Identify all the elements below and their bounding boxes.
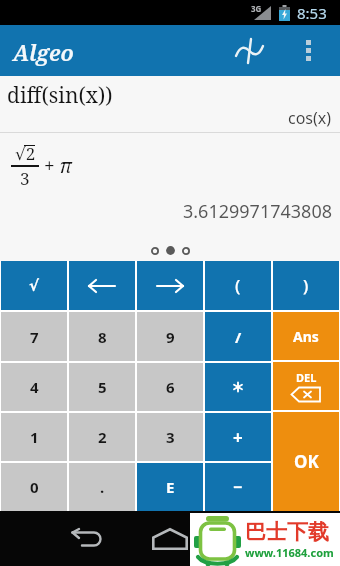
staticText: 3: [20, 167, 30, 190]
staticText: (: [235, 274, 241, 297]
staticText: √: [29, 277, 40, 294]
button[interactable]: 2: [69, 413, 135, 461]
button[interactable]: 1: [1, 413, 67, 461]
staticText: 巴士下载: [245, 519, 329, 545]
staticText: Algeo: [13, 37, 74, 67]
button[interactable]: [148, 511, 192, 566]
staticText: /: [235, 327, 242, 347]
staticText: +: [233, 426, 243, 449]
button[interactable]: E: [137, 463, 203, 511]
staticText: −: [233, 476, 243, 498]
staticText: + π: [39, 153, 72, 179]
button[interactable]: 6: [137, 363, 203, 411]
button[interactable]: [205, 363, 271, 411]
staticText: 6: [166, 377, 175, 397]
staticText: diff(sin(x)): [7, 81, 113, 110]
button[interactable]: .: [69, 463, 135, 511]
staticText: ): [303, 274, 309, 297]
button[interactable]: [228, 25, 272, 76]
staticText: Ans: [293, 327, 319, 346]
staticText: cos(x): [288, 107, 332, 129]
staticText: OK: [294, 450, 319, 473]
staticText: 2: [98, 427, 107, 447]
button[interactable]: 7: [1, 312, 67, 361]
button[interactable]: ): [273, 261, 339, 310]
button[interactable]: 0: [1, 463, 67, 511]
staticText: E: [166, 477, 175, 497]
staticText: √2: [15, 142, 36, 165]
button[interactable]: OK: [273, 412, 339, 511]
staticText: 3G: [251, 3, 262, 14]
button[interactable]: /: [205, 312, 271, 361]
staticText: 9: [166, 327, 175, 347]
button[interactable]: [69, 261, 135, 310]
button[interactable]: 巴士下载: [190, 513, 340, 566]
button[interactable]: +: [205, 413, 271, 461]
button[interactable]: 3: [137, 413, 203, 461]
button[interactable]: [64, 511, 108, 566]
button[interactable]: 9: [137, 312, 203, 361]
staticText: 1: [30, 427, 39, 447]
staticText: 4: [30, 377, 39, 397]
button[interactable]: [228, 511, 272, 566]
button[interactable]: 5: [69, 363, 135, 411]
button[interactable]: Ans: [273, 312, 339, 360]
button[interactable]: DEL: [273, 362, 339, 410]
button[interactable]: (: [205, 261, 271, 310]
staticText: 8:53: [297, 3, 327, 23]
button[interactable]: 8: [69, 312, 135, 361]
staticText: 3.6129971743808: [183, 199, 332, 224]
staticText: 3: [166, 427, 175, 447]
button[interactable]: −: [205, 463, 271, 511]
button[interactable]: 4: [1, 363, 67, 411]
staticText: 8: [98, 327, 107, 347]
staticText: www.11684.com: [245, 545, 334, 560]
staticText: DEL: [296, 370, 317, 385]
button[interactable]: √: [1, 261, 67, 310]
staticText: 0: [30, 477, 39, 497]
staticText: .: [100, 477, 105, 497]
button[interactable]: [288, 25, 328, 76]
button[interactable]: [137, 261, 203, 310]
staticText: 7: [30, 327, 39, 347]
staticText: 5: [98, 377, 107, 397]
